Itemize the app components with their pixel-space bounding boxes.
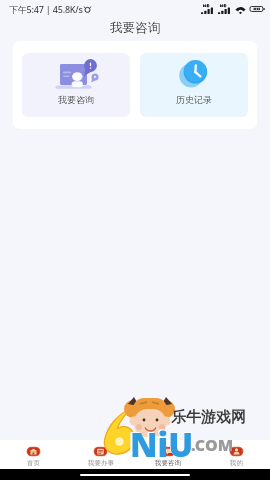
staticText: 乐牛游戏网 [171, 408, 246, 427]
staticText: 下午5:47 | 45.8K/s [9, 3, 83, 15]
button[interactable]: 历史记录 [140, 53, 248, 117]
staticText: NiU [128, 420, 194, 466]
button[interactable]: 我要咨询 [134, 440, 202, 469]
staticText: .COM [191, 434, 234, 456]
other: 我的 [229, 446, 244, 457]
staticText: NiU [130, 422, 194, 467]
button[interactable]: 我要咨询 [22, 53, 130, 117]
staticText: 首页 [27, 459, 40, 467]
staticText: 我要咨询 [110, 20, 161, 36]
staticText: 我要咨询 [155, 459, 181, 467]
button[interactable]: 我的 [202, 440, 270, 469]
staticText: 我要咨询 [58, 94, 94, 105]
other: 首页 [26, 446, 41, 457]
other: 我要办事 [93, 446, 108, 457]
staticText: 我要办事 [88, 459, 114, 467]
other: 我要咨询 [161, 446, 176, 457]
staticText: 历史记录 [176, 94, 212, 105]
staticText: 我的 [230, 459, 243, 467]
button[interactable]: 首页 [0, 440, 67, 469]
button[interactable]: 我要办事 [67, 440, 134, 469]
